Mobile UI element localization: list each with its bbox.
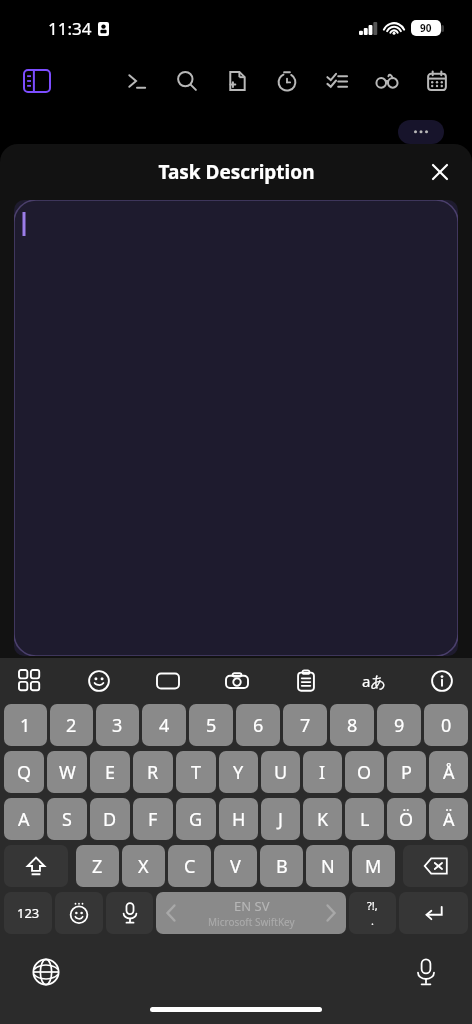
button[interactable]: Calendar — [412, 59, 462, 103]
button[interactable]: E — [90, 751, 130, 793]
button[interactable]: S — [47, 798, 87, 840]
button[interactable]: Info — [424, 663, 460, 699]
button[interactable]: New file — [212, 59, 262, 103]
button[interactable]: Translate — [357, 664, 391, 698]
staticText: 5 — [206, 713, 217, 738]
button[interactable]: ?!, — [349, 892, 396, 934]
button[interactable]: Enter — [399, 892, 468, 934]
staticText: U — [274, 760, 288, 785]
button[interactable]: F — [133, 798, 173, 840]
button[interactable]: G — [176, 798, 216, 840]
button[interactable]: Ö — [387, 798, 426, 840]
button[interactable]: W — [47, 751, 87, 793]
staticText: S — [62, 807, 72, 832]
button[interactable]: More options — [398, 120, 444, 144]
staticText: EN SV — [234, 897, 270, 915]
button[interactable]: T — [176, 751, 216, 793]
button[interactable]: 6 — [236, 704, 280, 746]
button[interactable]: 4 — [142, 704, 186, 746]
button[interactable]: Change language — [26, 952, 66, 992]
staticText: ?!, — [367, 898, 378, 913]
button[interactable]: X — [122, 845, 165, 887]
staticText: H — [232, 807, 246, 832]
button[interactable]: Search — [162, 59, 212, 103]
button[interactable]: Toggle sidebar — [20, 64, 54, 98]
staticText: Q — [17, 760, 32, 785]
button[interactable]: C — [168, 845, 211, 887]
button[interactable]: History — [262, 59, 312, 103]
button[interactable]: 0 — [424, 704, 468, 746]
staticText: Ä — [443, 807, 455, 832]
button[interactable]: Voice input — [106, 892, 153, 934]
button[interactable]: O — [345, 751, 384, 793]
staticText: V — [230, 854, 241, 879]
button[interactable]: Apps — [12, 663, 48, 699]
button[interactable]: Space, EN SV, Microsoft SwiftKey — [156, 892, 346, 934]
staticText: L — [360, 807, 370, 832]
button[interactable]: Clipboard — [288, 663, 324, 699]
button[interactable]: K — [303, 798, 342, 840]
staticText: X — [138, 854, 149, 879]
button[interactable]: Z — [76, 845, 119, 887]
staticText: 9 — [394, 713, 405, 738]
button[interactable]: V — [214, 845, 257, 887]
button[interactable]: GIF — [150, 663, 186, 699]
button[interactable]: I — [303, 751, 342, 793]
button[interactable]: 2 — [50, 704, 93, 746]
button[interactable]: A — [4, 798, 44, 840]
button[interactable]: Close — [420, 152, 460, 192]
staticText: C — [184, 854, 196, 879]
staticText: Microsoft SwiftKey — [208, 915, 295, 929]
button[interactable]: 9 — [377, 704, 421, 746]
staticText: 11:34 — [48, 17, 92, 40]
button[interactable]: Y — [219, 751, 258, 793]
button[interactable]: P — [387, 751, 426, 793]
button[interactable]: Camera — [219, 663, 255, 699]
button[interactable]: Ä — [429, 798, 468, 840]
button[interactable]: Voice typing — [406, 952, 446, 992]
button[interactable]: Emoji — [81, 663, 117, 699]
staticText: 1 — [20, 713, 31, 738]
button[interactable]: 123 — [4, 892, 52, 934]
staticText: 6 — [253, 713, 264, 738]
staticText: Ö — [399, 807, 414, 832]
staticText: Y — [233, 760, 244, 785]
button[interactable]: U — [261, 751, 300, 793]
staticText: P — [401, 760, 412, 785]
button[interactable]: B — [260, 845, 303, 887]
staticText: Z — [92, 854, 103, 879]
button[interactable]: M — [352, 845, 395, 887]
button[interactable]: H — [219, 798, 258, 840]
button[interactable]: Shift — [4, 845, 68, 887]
staticText: 2 — [66, 713, 77, 738]
button[interactable]: Q — [4, 751, 44, 793]
staticText: Å — [443, 760, 455, 785]
button[interactable]: 7 — [283, 704, 327, 746]
staticText: 7 — [300, 713, 311, 738]
button[interactable]: Read mode — [362, 59, 412, 103]
button[interactable]: 8 — [330, 704, 374, 746]
button[interactable]: R — [133, 751, 173, 793]
staticText: K — [317, 807, 329, 832]
button[interactable]: Tasks — [312, 59, 362, 103]
button[interactable]: 3 — [96, 704, 139, 746]
button[interactable]: Emoji — [55, 892, 103, 934]
staticText: 8 — [347, 713, 358, 738]
button[interactable]: 5 — [189, 704, 233, 746]
staticText: J — [278, 807, 283, 832]
button[interactable]: Terminal — [112, 59, 162, 103]
staticText: E — [105, 760, 116, 785]
button[interactable]: N — [306, 845, 349, 887]
button[interactable]: Å — [429, 751, 468, 793]
button[interactable]: D — [90, 798, 130, 840]
staticText: W — [59, 760, 76, 785]
staticText: Task Description — [158, 159, 315, 185]
staticText: 0 — [441, 713, 452, 738]
button[interactable]: 1 — [4, 704, 47, 746]
button[interactable] — [14, 200, 458, 656]
button[interactable]: J — [261, 798, 300, 840]
staticText: B — [276, 854, 288, 879]
staticText: A — [18, 807, 30, 832]
button[interactable]: L — [345, 798, 384, 840]
button[interactable]: Backspace — [403, 845, 468, 887]
